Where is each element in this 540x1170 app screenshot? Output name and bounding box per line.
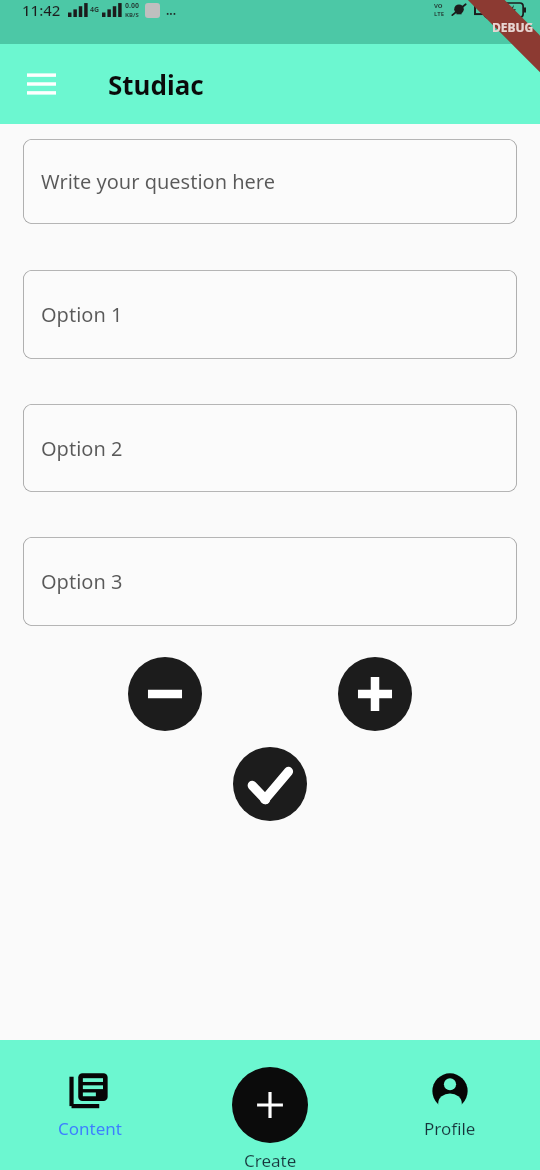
- button[interactable]: Open navigation menu: [14, 57, 68, 111]
- staticText: LTE: [434, 10, 445, 18]
- button[interactable]: Submit question: [233, 747, 307, 821]
- staticText: KB/S: [125, 11, 139, 19]
- button[interactable]: Add option: [338, 657, 412, 731]
- staticText: Option 1: [41, 301, 123, 328]
- button[interactable]: Write your question here: [23, 139, 517, 224]
- button[interactable]: Profile: [360, 1040, 540, 1170]
- button[interactable]: Option 2: [23, 404, 517, 492]
- staticText: Option 2: [41, 435, 123, 462]
- button[interactable]: Option 3: [23, 537, 517, 626]
- staticText: Profile: [424, 1117, 476, 1140]
- staticText: Write your question here: [41, 168, 275, 195]
- staticText: Create: [244, 1149, 297, 1170]
- staticText: VO: [434, 2, 443, 10]
- staticText: 0.00: [125, 1, 139, 11]
- staticText: Option 3: [41, 568, 123, 595]
- staticText: 4G: [90, 5, 100, 15]
- staticText: DEBUG: [492, 19, 534, 35]
- button[interactable]: Remove option: [128, 657, 202, 731]
- staticText: 11:42: [22, 0, 61, 20]
- staticText: Studiac: [108, 67, 204, 102]
- button[interactable]: Option 1: [23, 270, 517, 359]
- staticText: Content: [58, 1117, 122, 1140]
- staticText: ...: [166, 2, 177, 18]
- button[interactable]: Create: [232, 1067, 308, 1143]
- button[interactable]: Content: [0, 1040, 180, 1170]
